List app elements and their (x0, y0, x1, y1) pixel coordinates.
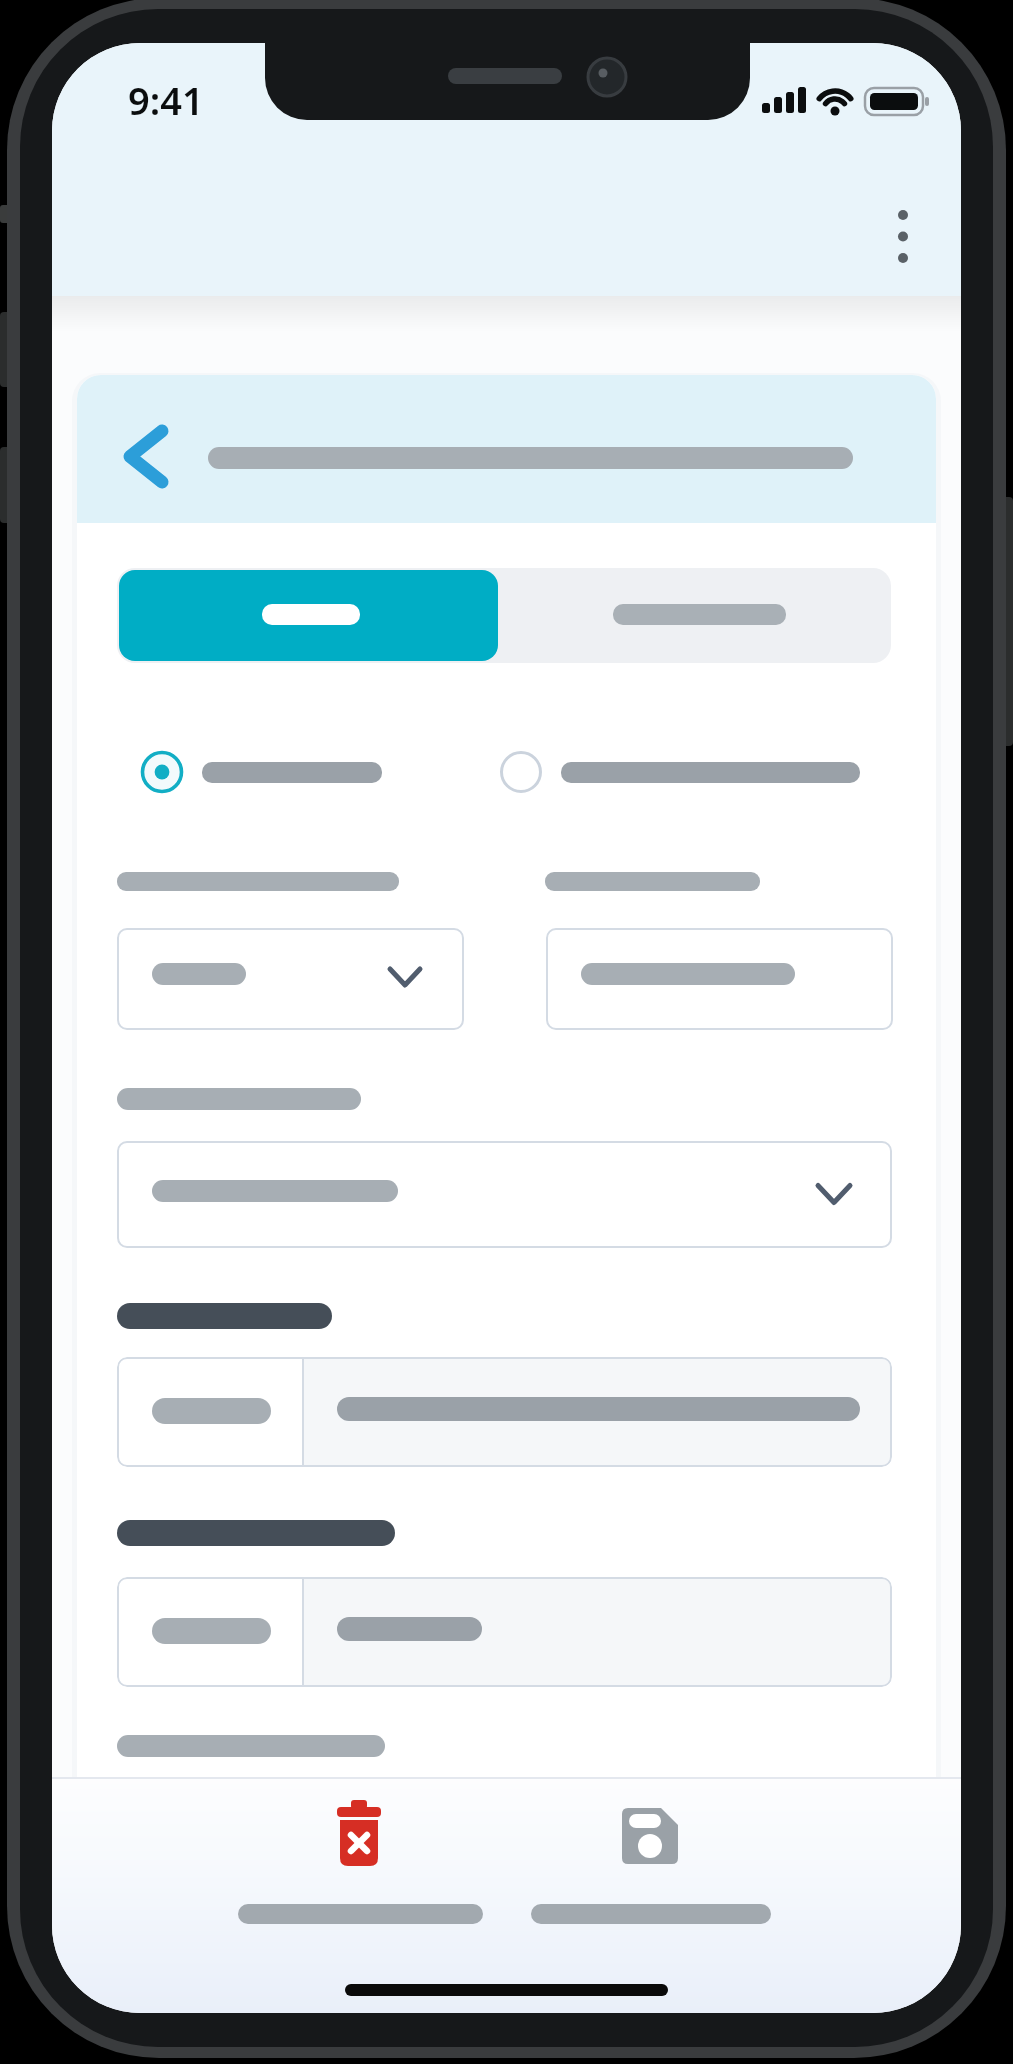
button[interactable] (875, 193, 931, 283)
button[interactable] (140, 748, 412, 796)
button[interactable] (117, 1141, 892, 1248)
button[interactable] (117, 928, 464, 1030)
button[interactable] (531, 1791, 771, 1926)
button[interactable] (238, 1791, 483, 1926)
button[interactable] (117, 407, 205, 495)
button[interactable] (546, 928, 893, 1030)
button[interactable] (499, 748, 879, 796)
staticText: 9:41 (128, 74, 204, 126)
button[interactable] (498, 568, 891, 663)
button[interactable] (119, 570, 498, 661)
